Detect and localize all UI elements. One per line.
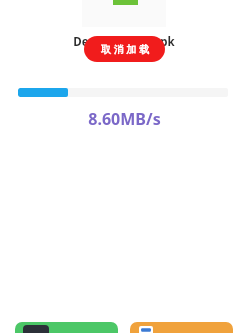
staticText: 8.60MB/s xyxy=(88,108,161,130)
button[interactable]: Open orange app xyxy=(130,322,233,333)
button[interactable]: Open green app xyxy=(15,322,118,333)
button[interactable]: 取 消 加 载 xyxy=(84,36,165,62)
staticText: 取 消 加 载 xyxy=(101,42,149,56)
staticText: DeepN 01.apk xyxy=(73,34,175,50)
